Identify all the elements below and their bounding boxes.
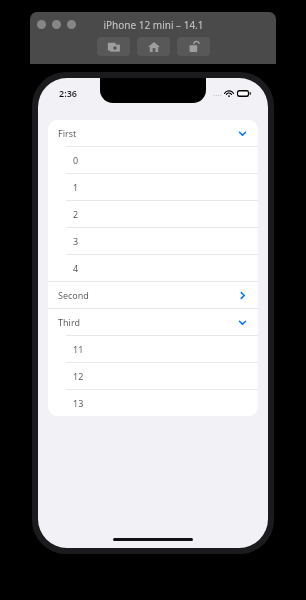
button[interactable]: 11 [48, 336, 258, 362]
button[interactable]: Rotate [177, 37, 210, 56]
staticText: 3 [73, 235, 79, 247]
staticText: 2 [73, 208, 79, 220]
button[interactable]: Window control [67, 20, 76, 29]
staticText: 4 [73, 262, 79, 274]
staticText: 0 [73, 154, 79, 166]
button[interactable]: 12 [48, 363, 258, 389]
staticText: 13 [73, 397, 84, 409]
button[interactable]: 4 [48, 255, 258, 281]
staticText: 1 [73, 181, 79, 193]
staticText: 12 [73, 370, 84, 382]
button[interactable]: 0 [48, 147, 258, 173]
staticText: First [58, 127, 77, 139]
button[interactable]: 13 [48, 390, 258, 416]
button[interactable]: First [48, 120, 258, 146]
staticText: Third [58, 316, 80, 328]
button[interactable]: 1 [48, 174, 258, 200]
button[interactable]: Window control [52, 20, 61, 29]
staticText: iPhone 12 mini – 14.1 [103, 18, 204, 32]
button[interactable]: Second [48, 282, 258, 308]
button[interactable]: 2 [48, 201, 258, 227]
button[interactable]: Window control [37, 20, 46, 29]
button[interactable]: Third [48, 309, 258, 335]
staticText: 11 [73, 343, 84, 355]
staticText: 2:36 [59, 87, 77, 99]
button[interactable]: 3 [48, 228, 258, 254]
button[interactable]: Screenshot [97, 37, 130, 56]
staticText: Second [58, 289, 89, 301]
button[interactable]: Home [137, 37, 170, 56]
